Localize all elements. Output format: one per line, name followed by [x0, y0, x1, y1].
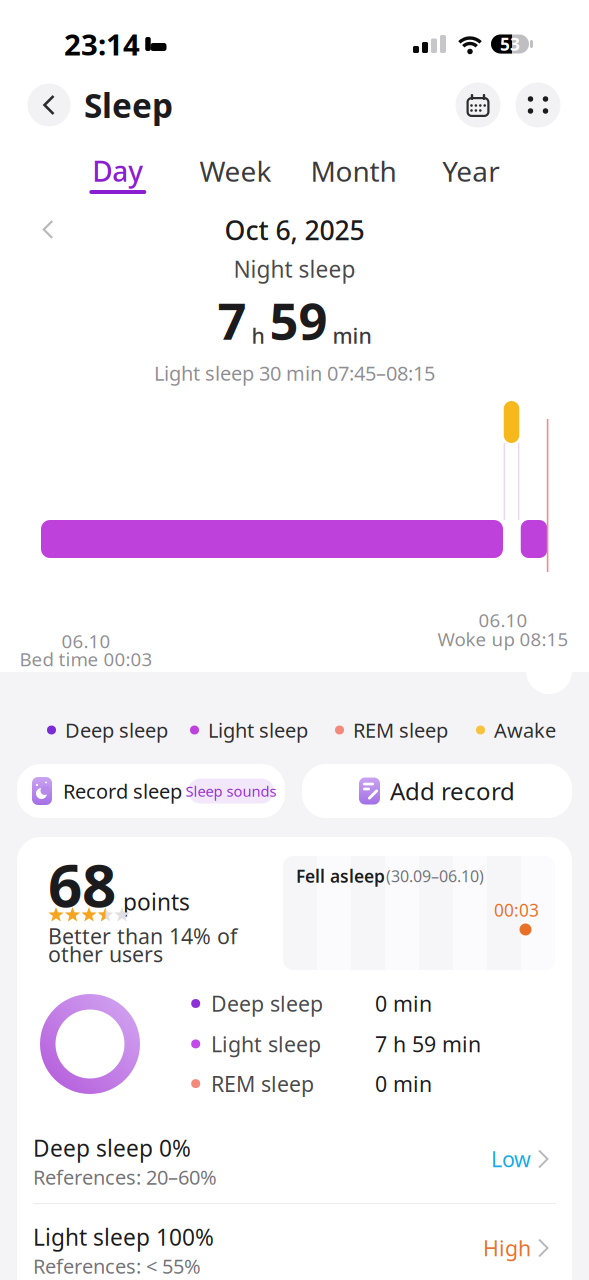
staticText: Record sleep [63, 778, 182, 804]
staticText: 23:14 [64, 24, 140, 63]
staticText: h [251, 321, 264, 350]
staticText: 00:03 [494, 898, 539, 921]
staticText: other users [48, 940, 163, 968]
staticText: Better than 14% of [48, 922, 237, 950]
staticText: Woke up 08:15 [437, 627, 568, 651]
staticText: References: < 55% [33, 1253, 201, 1279]
staticText: Sleep [84, 83, 173, 127]
staticText: points [123, 887, 190, 917]
staticText: 0 min [375, 1069, 432, 1098]
staticText: 59 [269, 286, 327, 354]
button[interactable]: Week [191, 151, 281, 191]
staticText: 06.10 [61, 629, 110, 653]
staticText: Light sleep [211, 1030, 321, 1058]
staticText: REM sleep [211, 1069, 314, 1098]
staticText: Awake [494, 717, 556, 743]
staticText: 06.10 [478, 608, 527, 632]
staticText: Light sleep 100% [33, 1222, 214, 1252]
staticText: Night sleep [233, 254, 355, 284]
staticText: High [483, 1234, 531, 1262]
staticText: min [332, 321, 371, 350]
staticText: Deep sleep [65, 717, 168, 743]
staticText: Deep sleep 0% [33, 1133, 191, 1163]
staticText: 7 h 59 min [375, 1030, 481, 1058]
button[interactable]: Light sleep 100% [17, 1209, 572, 1280]
staticText: Low [491, 1145, 531, 1173]
button[interactable] [27, 83, 70, 126]
button[interactable]: Record sleep [17, 764, 285, 818]
staticText: Fell asleep [296, 864, 385, 887]
staticText: Light sleep 30 min 07:45–08:15 [154, 360, 435, 386]
staticText: References: 20–60% [33, 1164, 217, 1190]
button[interactable]: Month [308, 151, 398, 191]
staticText: REM sleep [353, 717, 448, 743]
button[interactable] [515, 82, 560, 127]
staticText: Light sleep [208, 717, 308, 743]
staticText: Sleep sounds [185, 781, 276, 801]
staticText: Bed time 00:03 [19, 647, 152, 671]
button[interactable]: Day [73, 151, 163, 191]
button[interactable]: Add record [302, 764, 572, 818]
button[interactable] [455, 82, 500, 127]
staticText: Month [310, 152, 396, 190]
staticText: Week [200, 152, 272, 190]
staticText: Year [442, 152, 500, 190]
staticText: Oct 6, 2025 [224, 212, 364, 248]
staticText: (30.09–06.10) [386, 865, 484, 887]
button[interactable]: Deep sleep 0% [17, 1120, 572, 1204]
staticText: 68 [48, 844, 116, 924]
staticText: Day [92, 152, 143, 190]
staticText: Deep sleep [211, 989, 323, 1018]
staticText: 7 [217, 286, 246, 354]
staticText: Add record [390, 775, 515, 807]
button[interactable]: Year [426, 151, 516, 191]
button[interactable] [28, 209, 68, 249]
staticText: 0 min [375, 989, 432, 1018]
staticText: 53 [500, 32, 520, 55]
